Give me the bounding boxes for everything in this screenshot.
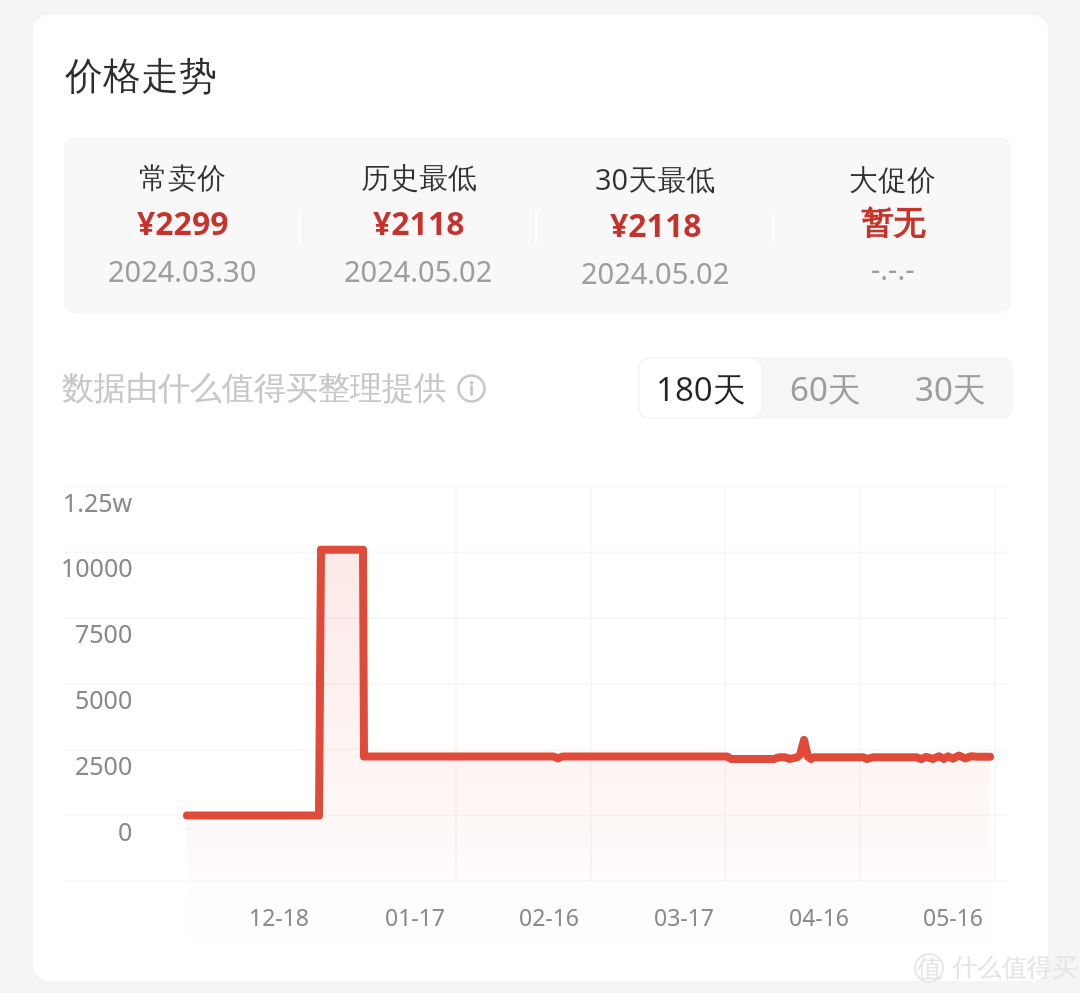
staticText: 2024.03.30 [108,251,257,290]
staticText: 大促价 [849,162,936,199]
staticText: ¥2118 [610,203,702,247]
staticText: 10000 [61,550,133,580]
staticText: 数据由什么值得买整理提供 [62,368,446,408]
staticText: 历史最低 [361,160,477,197]
other: 数据说明 [457,374,486,403]
button[interactable]: 30天 [890,359,1011,417]
button[interactable]: 60天 [765,359,886,417]
staticText: 01-17 [385,901,446,931]
button[interactable]: 30天最低 [537,137,774,313]
button[interactable]: 常卖价 [64,137,300,313]
staticText: 常卖价 [139,160,226,197]
staticText: -.-.- [871,249,915,288]
staticText: 7500 [75,616,133,646]
staticText: 180天 [656,366,746,411]
staticText: 2024.05.02 [344,251,493,290]
staticText: 12-18 [249,901,310,931]
staticText: 30天最低 [595,159,716,199]
staticText: 02-16 [519,901,580,931]
staticText: 60天 [790,366,861,411]
staticText: 值 [917,953,942,983]
staticText: 1.25w [63,485,133,515]
staticText: 暂无 [861,203,925,243]
staticText: 0 [118,814,133,844]
button[interactable]: 180天 [640,359,761,417]
staticText: ¥2118 [373,201,465,245]
staticText: 2500 [75,748,133,778]
staticText: 30天 [915,366,986,411]
staticText: 2024.05.02 [581,253,730,292]
staticText: 03-17 [654,901,715,931]
button[interactable]: 数据由什么值得买整理提供 [62,357,486,419]
staticText: 05-16 [923,901,984,931]
staticText: 价格走势 [65,52,217,100]
button[interactable]: 大促价 [774,137,1011,313]
staticText: 5000 [75,682,133,712]
staticText: 04-16 [789,901,850,931]
button[interactable]: 历史最低 [300,137,537,313]
staticText: 什么值得买 [952,952,1077,983]
staticText: ¥2299 [137,201,229,245]
